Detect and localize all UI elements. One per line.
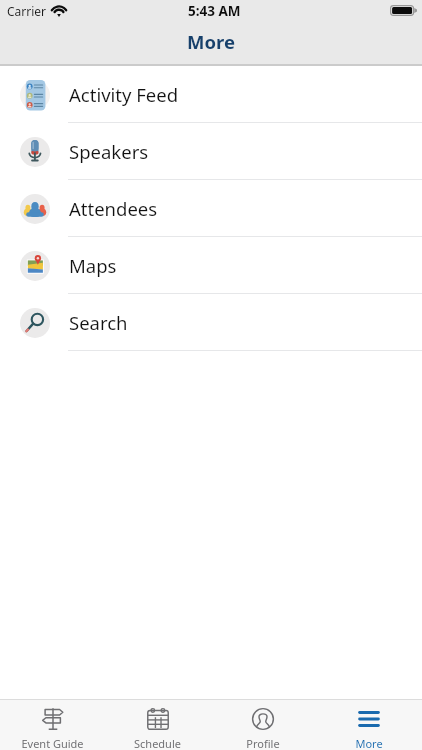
button[interactable]: Maps xyxy=(0,237,422,294)
staticText: Schedule xyxy=(134,736,181,750)
button[interactable]: Profile xyxy=(210,700,316,750)
button[interactable]: Attendees xyxy=(0,180,422,237)
staticText: More xyxy=(355,736,383,750)
staticText: Profile xyxy=(246,736,280,750)
staticText: 5:43 AM xyxy=(188,2,241,20)
staticText: More xyxy=(187,29,235,54)
staticText: Attendees xyxy=(69,196,158,221)
staticText: Event Guide xyxy=(21,736,84,750)
staticText: Speakers xyxy=(69,139,149,164)
staticText: Activity Feed xyxy=(69,82,179,107)
button[interactable]: Event Guide xyxy=(0,700,105,750)
button[interactable]: Search xyxy=(0,294,422,351)
button[interactable]: Activity Feed xyxy=(0,66,422,123)
staticText: Carrier xyxy=(7,3,47,19)
staticText: Maps xyxy=(69,253,117,278)
button[interactable]: Schedule xyxy=(105,700,210,750)
button[interactable]: More xyxy=(316,700,422,750)
staticText: Search xyxy=(69,310,128,335)
button[interactable]: Speakers xyxy=(0,123,422,180)
